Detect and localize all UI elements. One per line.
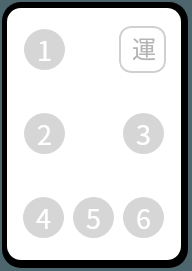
staticText: 1: [37, 30, 52, 69]
button[interactable]: 5: [73, 197, 114, 238]
staticText: 5: [86, 198, 101, 237]
staticText: 4: [36, 198, 51, 237]
staticText: 運: [132, 30, 156, 65]
button[interactable]: 1: [24, 29, 65, 70]
button[interactable]: 6: [123, 197, 164, 238]
staticText: 3: [136, 114, 151, 153]
staticText: 2: [37, 114, 52, 153]
button[interactable]: 3: [123, 113, 164, 154]
button[interactable]: 2: [24, 113, 65, 154]
button[interactable]: Kanji 運: [119, 26, 166, 73]
staticText: 6: [136, 198, 151, 237]
button[interactable]: 4: [23, 197, 64, 238]
